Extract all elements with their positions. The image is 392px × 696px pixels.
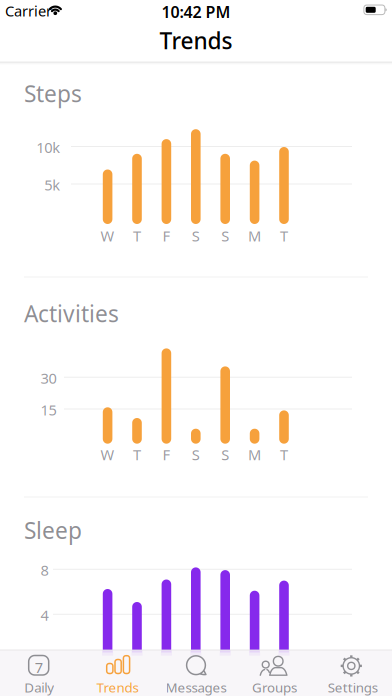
staticText: 15 bbox=[40, 400, 56, 419]
staticText: Daily bbox=[24, 678, 54, 696]
staticText: M bbox=[248, 445, 261, 464]
staticText: T bbox=[133, 226, 141, 245]
staticText: W bbox=[101, 445, 115, 464]
staticText: S bbox=[221, 445, 229, 464]
staticText: Settings bbox=[328, 678, 378, 696]
staticText: F bbox=[162, 445, 170, 464]
staticText: T bbox=[133, 445, 141, 464]
staticText: Activities bbox=[24, 298, 119, 328]
staticText: M bbox=[248, 226, 261, 245]
staticText: 10k bbox=[36, 137, 60, 157]
staticText: F bbox=[162, 226, 170, 245]
button[interactable]: Groups bbox=[235, 650, 314, 696]
staticText: Steps bbox=[24, 78, 82, 109]
staticText: 8 bbox=[40, 560, 48, 580]
staticText: Carrier bbox=[5, 1, 52, 20]
staticText: T bbox=[280, 445, 288, 464]
staticText: 5k bbox=[44, 175, 60, 194]
staticText: 10:42 PM bbox=[161, 1, 230, 22]
staticText: 4 bbox=[40, 605, 48, 625]
staticText: Messages bbox=[165, 678, 226, 696]
staticText: S bbox=[221, 226, 229, 245]
staticText: W bbox=[101, 226, 115, 245]
button[interactable]: Trends bbox=[78, 650, 157, 696]
staticText: Groups bbox=[252, 678, 297, 696]
staticText: T bbox=[280, 226, 288, 245]
staticText: Trends bbox=[159, 25, 232, 56]
staticText: 7 bbox=[35, 657, 43, 677]
button[interactable]: Daily bbox=[0, 650, 78, 696]
staticText: 30 bbox=[40, 368, 56, 388]
button[interactable]: Messages bbox=[157, 650, 235, 696]
staticText: Trends bbox=[97, 678, 139, 696]
button[interactable]: Settings bbox=[314, 650, 392, 696]
staticText: S bbox=[192, 445, 200, 464]
staticText: Sleep bbox=[24, 515, 82, 545]
staticText: S bbox=[192, 226, 200, 245]
